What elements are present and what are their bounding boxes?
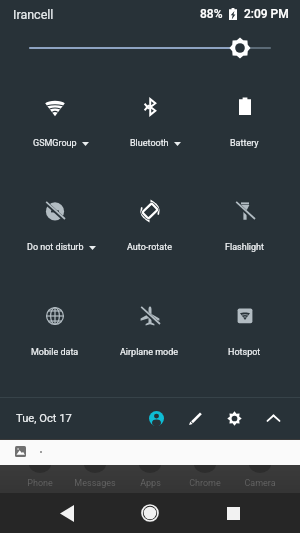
button[interactable]: GSMGroup [8, 74, 102, 156]
button[interactable]: Airplane mode [102, 283, 197, 365]
staticText: GSMGroup [33, 138, 77, 149]
staticText: Apps [140, 478, 161, 489]
staticText: Messages [74, 478, 116, 489]
button[interactable]: Mobile data [8, 283, 102, 365]
staticText: Phone [27, 478, 53, 489]
staticText: Hotspot [228, 347, 261, 358]
button[interactable]: Do not disturb [8, 178, 102, 260]
staticText: 88% [200, 7, 223, 21]
staticText: Do not disturb [27, 242, 84, 253]
staticText: Auto-rotate [127, 242, 172, 253]
button[interactable]: Bluetooth [102, 74, 197, 156]
staticText: Bluetooth [130, 138, 169, 149]
button[interactable]: Back [47, 493, 86, 533]
button[interactable]: User [137, 398, 176, 439]
button[interactable]: Edit [176, 398, 215, 439]
staticText: Tue, Oct 17 [16, 412, 72, 425]
staticText: Camera [244, 478, 276, 489]
button[interactable]: Collapse [254, 398, 293, 439]
staticText: 2:09 PM [244, 7, 289, 21]
button[interactable]: Recents [214, 493, 253, 533]
staticText: Chrome [189, 478, 221, 489]
staticText: Battery [230, 138, 259, 149]
button[interactable]: Auto-rotate [102, 178, 197, 260]
staticText: Airplane mode [120, 347, 179, 358]
button[interactable]: Battery [197, 74, 292, 156]
button[interactable]: Hotspot [197, 283, 292, 365]
button[interactable]: Flashlight [197, 178, 292, 260]
staticText: Mobile data [31, 347, 79, 358]
button[interactable]: Home [130, 493, 170, 533]
staticText: Irancell [13, 7, 54, 22]
button[interactable]: Settings [215, 398, 254, 439]
staticText: Flashlight [225, 242, 264, 253]
